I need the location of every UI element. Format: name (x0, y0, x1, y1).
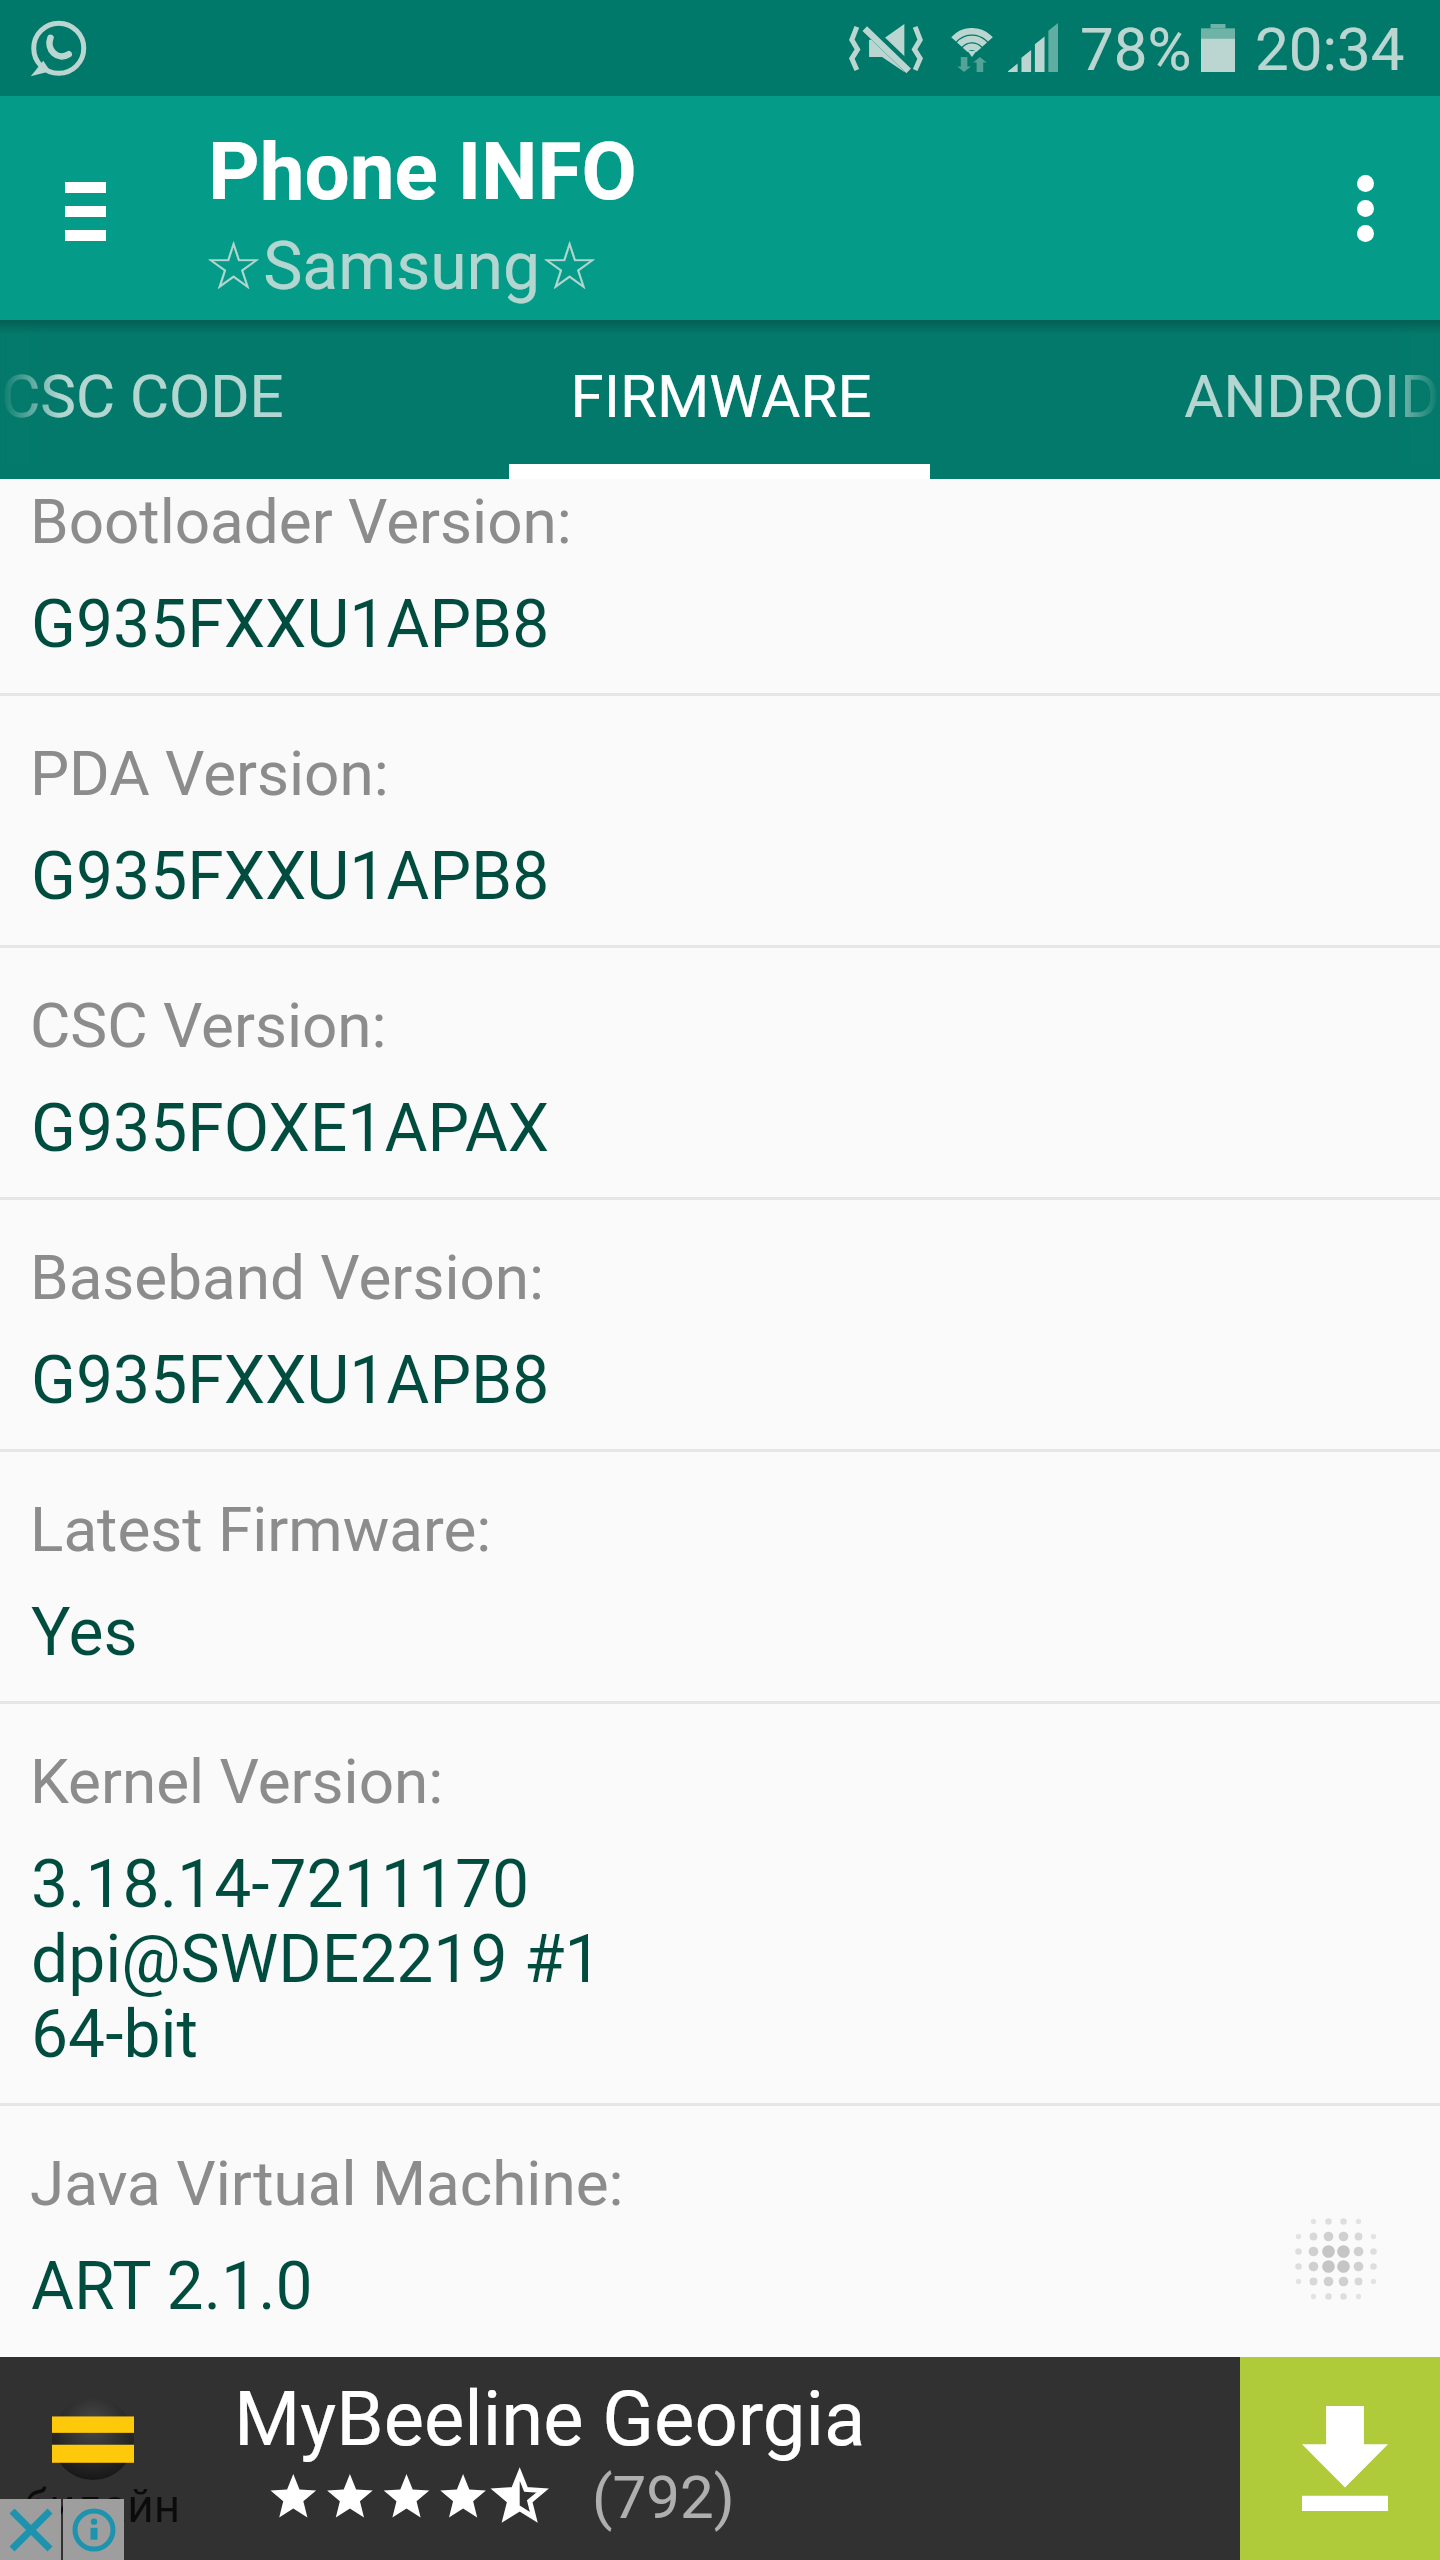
button[interactable]: Kernel Version: (0, 1704, 1440, 2106)
staticText: CSC CODE (1, 361, 284, 431)
other: WhatsApp notification (28, 21, 86, 79)
staticText: PDA Version: (30, 737, 389, 810)
button[interactable]: Open navigation drawer (0, 96, 170, 320)
staticText: MyBeeline Georgia (234, 2374, 866, 2463)
button[interactable]: PDA Version: (0, 696, 1440, 948)
staticText: Java Virtual Machine: (30, 2147, 624, 2220)
other: Battery (1201, 24, 1235, 72)
staticText: dpi@SWDE2219 #1 (31, 1921, 602, 1998)
staticText: Kernel Version: (30, 1745, 444, 1818)
staticText: 20:34 (1255, 14, 1405, 84)
button[interactable]: Bootloader Version: (0, 479, 1440, 696)
staticText: Bootloader Version: (30, 485, 572, 558)
button[interactable]: Baseband Version: (0, 1200, 1440, 1452)
other: Signal strength (1008, 23, 1058, 72)
other: Wi-Fi (950, 22, 994, 72)
staticText: 3.18.14-7211170 (31, 1846, 530, 1923)
staticText: Baseband Version: (30, 1241, 545, 1314)
button[interactable]: Install app (1240, 2357, 1440, 2560)
button[interactable]: CSC Version: (0, 948, 1440, 1200)
staticText: ☆Samsung☆ (204, 228, 600, 305)
staticText: G935FXXU1APB8 (31, 586, 550, 663)
staticText: ART 2.1.0 (31, 2248, 313, 2325)
staticText: CSC Version: (30, 989, 387, 1062)
staticText: G935FXXU1APB8 (31, 1342, 550, 1419)
button[interactable]: Latest Firmware: (0, 1452, 1440, 1704)
button[interactable]: Java Virtual Machine: (0, 2106, 1440, 2322)
staticText: Latest Firmware: (30, 1493, 492, 1566)
staticText: 64-bit (31, 1996, 199, 2073)
staticText: G935FOXE1APAX (31, 1090, 550, 1167)
staticText: билайн (24, 2479, 181, 2533)
button[interactable]: FIRMWARE (510, 320, 931, 479)
button[interactable]: ANDROID (1101, 320, 1440, 479)
staticText: Phone INFO (208, 125, 637, 219)
other: Silent mode (850, 24, 922, 72)
staticText: Yes (31, 1594, 138, 1671)
staticText: ANDROID (1184, 361, 1440, 431)
button[interactable]: Close ad (0, 2499, 61, 2560)
staticText: FIRMWARE (570, 361, 872, 431)
button[interactable]: Ad information (63, 2499, 124, 2560)
button[interactable]: More options (1290, 96, 1440, 320)
button[interactable]: CSC CODE (0, 320, 353, 479)
staticText: G935FXXU1APB8 (31, 838, 550, 915)
staticText: (792) (592, 2462, 735, 2532)
staticText: 78% (1080, 14, 1192, 84)
button[interactable]: билайн (0, 2357, 1240, 2560)
